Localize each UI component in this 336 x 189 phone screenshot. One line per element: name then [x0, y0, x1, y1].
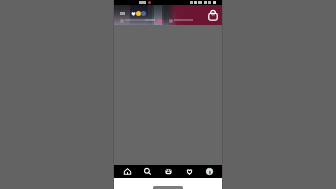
button[interactable]: Search: [139, 165, 155, 178]
button[interactable]: Profile: [201, 165, 217, 178]
button[interactable]: Reels: [160, 165, 176, 178]
button[interactable]: Home: [119, 165, 135, 178]
button[interactable]: Shop: [208, 9, 218, 21]
button[interactable]: Activity: [181, 165, 197, 178]
